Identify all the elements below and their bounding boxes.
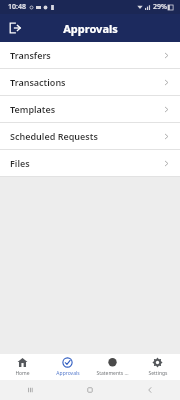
staticText: Approvals: [56, 370, 80, 377]
staticText: Approvals: [63, 21, 118, 36]
button[interactable]: Transfers: [0, 42, 180, 68]
button[interactable]: Home: [60, 380, 120, 400]
button[interactable]: Statements ...: [90, 354, 135, 380]
button[interactable]: Files: [0, 150, 180, 176]
staticText: 10:48: [8, 2, 26, 12]
button[interactable]: Transactions: [0, 69, 180, 95]
staticText: Transactions: [10, 76, 163, 88]
button[interactable]: Back: [120, 380, 180, 400]
staticText: Templates: [10, 103, 163, 115]
staticText: Home: [15, 370, 30, 377]
button[interactable]: Recent apps: [0, 380, 60, 400]
staticText: 29%: [153, 2, 167, 12]
button[interactable]: Scheduled Requests: [0, 123, 180, 149]
staticText: Files: [10, 157, 163, 169]
staticText: Statements ...: [96, 370, 129, 377]
staticText: Settings: [148, 370, 168, 377]
staticText: Transfers: [10, 49, 163, 61]
button[interactable]: Templates: [0, 96, 180, 122]
button[interactable]: Approvals: [45, 354, 90, 380]
button[interactable]: Settings: [135, 354, 180, 380]
button[interactable]: Home: [0, 354, 45, 380]
button[interactable]: Log out: [4, 17, 26, 39]
staticText: Scheduled Requests: [10, 130, 163, 142]
